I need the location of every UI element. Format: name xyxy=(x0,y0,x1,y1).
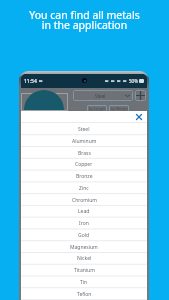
staticText: Nickel xyxy=(77,255,92,262)
button[interactable]: Zinc xyxy=(21,182,147,194)
staticText: 11:54 xyxy=(24,78,37,85)
staticText: Teflon xyxy=(77,291,92,298)
button[interactable]: by Weight xyxy=(109,105,129,112)
staticText: Chromium xyxy=(72,197,97,204)
staticText: Steel xyxy=(78,126,90,133)
staticText: Iron xyxy=(79,220,89,227)
staticText: Brass xyxy=(78,150,91,157)
staticText: Aluminum xyxy=(72,138,97,145)
staticText: by Weight xyxy=(111,106,128,111)
button[interactable]: Magnesium xyxy=(21,241,147,253)
button[interactable]: Gold xyxy=(21,229,147,241)
staticText: Bronze xyxy=(76,173,93,180)
staticText: Titanium xyxy=(74,267,95,274)
button[interactable]: by Length xyxy=(87,105,107,112)
button[interactable]: Close xyxy=(134,112,143,121)
button[interactable]: Chromium xyxy=(21,194,147,206)
button[interactable]: Tin xyxy=(21,276,147,288)
button[interactable]: Bronze xyxy=(21,170,147,182)
staticText: Gold xyxy=(78,232,90,239)
staticText: Lead xyxy=(78,208,90,215)
button[interactable]: Iron xyxy=(21,217,147,229)
button[interactable]: Nickel xyxy=(21,252,147,264)
staticText: 50% xyxy=(129,78,138,84)
button[interactable]: Titanium xyxy=(21,264,147,276)
button[interactable]: Steel xyxy=(21,123,147,135)
button[interactable]: Aluminum xyxy=(21,135,147,147)
button[interactable]: Teflon xyxy=(21,288,147,300)
staticText: Zinc xyxy=(79,185,89,192)
staticText: Tin xyxy=(80,279,88,286)
staticText: Steel xyxy=(95,93,106,99)
staticText: by Length xyxy=(89,106,106,111)
button[interactable]: Brass xyxy=(21,147,147,159)
button[interactable]: Lead xyxy=(21,205,147,217)
staticText: Magnesium xyxy=(70,244,98,251)
staticText: Copper xyxy=(75,161,93,168)
button[interactable]: Add xyxy=(135,90,146,101)
staticText: You can find all metals in the applicati… xyxy=(0,8,169,32)
button[interactable]: Copper xyxy=(21,158,147,170)
button[interactable]: Steel xyxy=(73,90,133,101)
